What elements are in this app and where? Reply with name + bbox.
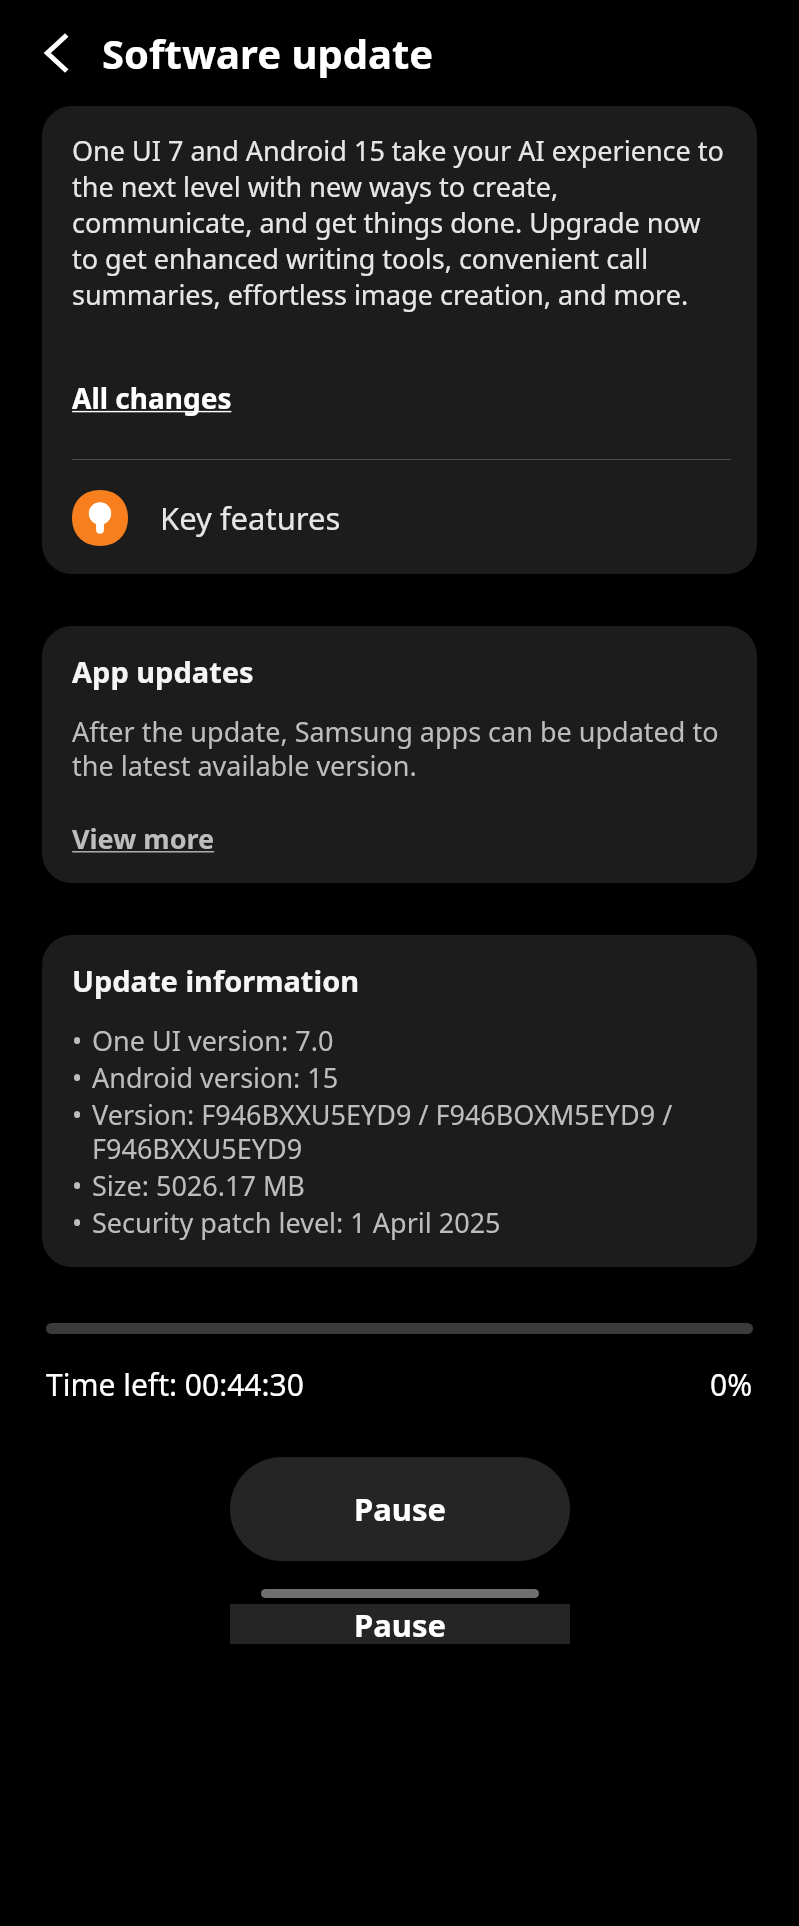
- button[interactable]: App updates: [42, 626, 757, 883]
- button[interactable]: View more: [72, 820, 215, 857]
- staticText: One UI 7 and Android 15 take your AI exp…: [72, 132, 731, 313]
- staticText: Android version: 15: [92, 1059, 339, 1096]
- staticText: After the update, Samsung apps can be up…: [72, 713, 731, 784]
- staticText: View more: [72, 820, 215, 857]
- staticText: •: [72, 1059, 92, 1096]
- staticText: •: [72, 1096, 92, 1133]
- staticText: •: [72, 1167, 92, 1204]
- staticText: Key features: [160, 497, 341, 539]
- staticText: App updates: [72, 652, 254, 691]
- button[interactable]: One UI 7 and Android 15 take your AI exp…: [42, 106, 757, 574]
- button[interactable]: Back: [26, 22, 88, 84]
- staticText: •: [72, 1204, 92, 1241]
- staticText: Pause: [354, 1604, 447, 1644]
- button[interactable]: Pause: [230, 1457, 570, 1561]
- button[interactable]: Update information: [42, 935, 757, 1267]
- staticText: Version: F946BXXU5EYD9 / F946BOXM5EYD9 /…: [92, 1096, 731, 1167]
- staticText: Pause: [354, 1488, 447, 1530]
- staticText: Security patch level: 1 April 2025: [92, 1204, 501, 1241]
- staticText: Time left: 00:44:30: [46, 1364, 304, 1405]
- staticText: All changes: [72, 379, 232, 417]
- staticText: One UI version: 7.0: [92, 1022, 334, 1059]
- staticText: 0%: [710, 1364, 753, 1405]
- staticText: •: [72, 1022, 92, 1059]
- staticText: Size: 5026.17 MB: [92, 1167, 305, 1204]
- button[interactable]: Key features: [72, 490, 731, 546]
- staticText: Software update: [102, 26, 434, 80]
- staticText: Update information: [72, 961, 360, 1000]
- button[interactable]: All changes: [72, 379, 232, 417]
- button[interactable]: Pause: [230, 1604, 570, 1644]
